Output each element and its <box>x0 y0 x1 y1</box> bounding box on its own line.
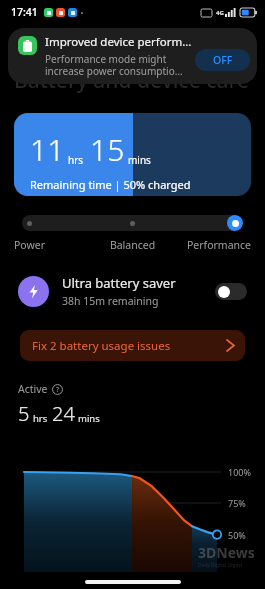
button[interactable]: Performance <box>172 238 251 252</box>
staticText: 17:41 <box>11 5 38 19</box>
staticText: Fix 2 battery usage issues <box>32 338 171 354</box>
button[interactable]: Improved device perform… <box>8 28 257 84</box>
staticText: Daily Digital Digest <box>198 562 243 569</box>
staticText: Ultra battery saver <box>62 274 176 292</box>
button[interactable]: About active time <box>52 384 63 395</box>
staticText: Active <box>18 382 48 396</box>
staticText: Battery and device care <box>14 66 250 95</box>
staticText: Improved device perform… <box>45 34 192 50</box>
button[interactable] <box>22 215 243 231</box>
staticText: OFF <box>213 53 233 67</box>
staticText: hrs <box>33 412 48 425</box>
staticText: Remaining time | 50% charged <box>30 177 191 192</box>
staticText: 11 <box>30 129 65 170</box>
staticText: 38h 15m remaining <box>62 294 159 308</box>
button[interactable]: Ultra battery saver <box>0 274 265 308</box>
button[interactable]: 11 <box>14 113 251 196</box>
button[interactable]: Power <box>14 238 93 252</box>
staticText: hrs <box>68 153 84 167</box>
button[interactable]: OFF <box>195 49 250 71</box>
staticText: 4G <box>216 9 224 17</box>
staticText: ? <box>56 385 60 395</box>
staticText: 75% <box>228 497 246 509</box>
button[interactable]: Toggle ultra battery saver <box>215 283 247 300</box>
staticText: mins <box>78 412 100 425</box>
button[interactable]: Balanced <box>93 238 172 252</box>
staticText: 3DNews <box>198 543 255 562</box>
staticText: 100% <box>228 466 251 478</box>
staticText: 5 <box>18 400 30 427</box>
staticText: 24 <box>52 400 75 427</box>
staticText: Performance mode might increase power co… <box>45 52 195 78</box>
staticText: 50% <box>228 529 246 541</box>
staticText: 15 <box>90 129 125 170</box>
staticText: mins <box>128 153 151 167</box>
button[interactable]: Fix 2 battery usage issues <box>20 330 245 361</box>
